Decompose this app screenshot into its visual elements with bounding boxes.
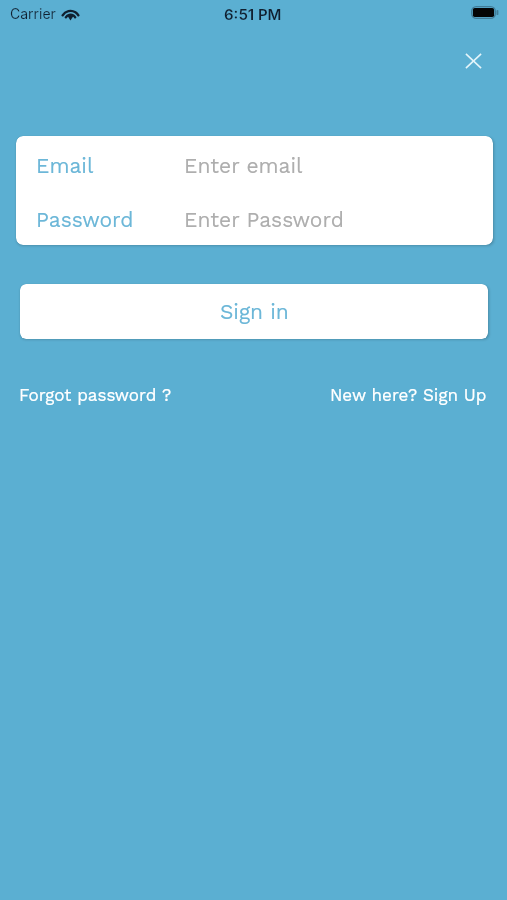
staticText: Enter email bbox=[184, 153, 303, 178]
staticText: New here? Sign Up bbox=[330, 385, 487, 405]
staticText: Carrier bbox=[10, 5, 56, 22]
button[interactable]: Email bbox=[16, 136, 493, 191]
staticText: Forgot password ? bbox=[19, 385, 172, 405]
staticText: 6:51 PM bbox=[224, 5, 282, 23]
staticText: Enter Password bbox=[184, 207, 344, 232]
staticText: Email bbox=[36, 153, 94, 178]
button[interactable]: Sign in bbox=[20, 284, 488, 339]
button[interactable]: Close bbox=[453, 41, 493, 81]
button[interactable]: Password bbox=[16, 191, 493, 245]
staticText: Password bbox=[36, 207, 134, 232]
button[interactable]: New here? Sign Up bbox=[330, 385, 487, 405]
staticText: Sign in bbox=[220, 299, 289, 324]
button[interactable]: Forgot password ? bbox=[19, 385, 172, 405]
